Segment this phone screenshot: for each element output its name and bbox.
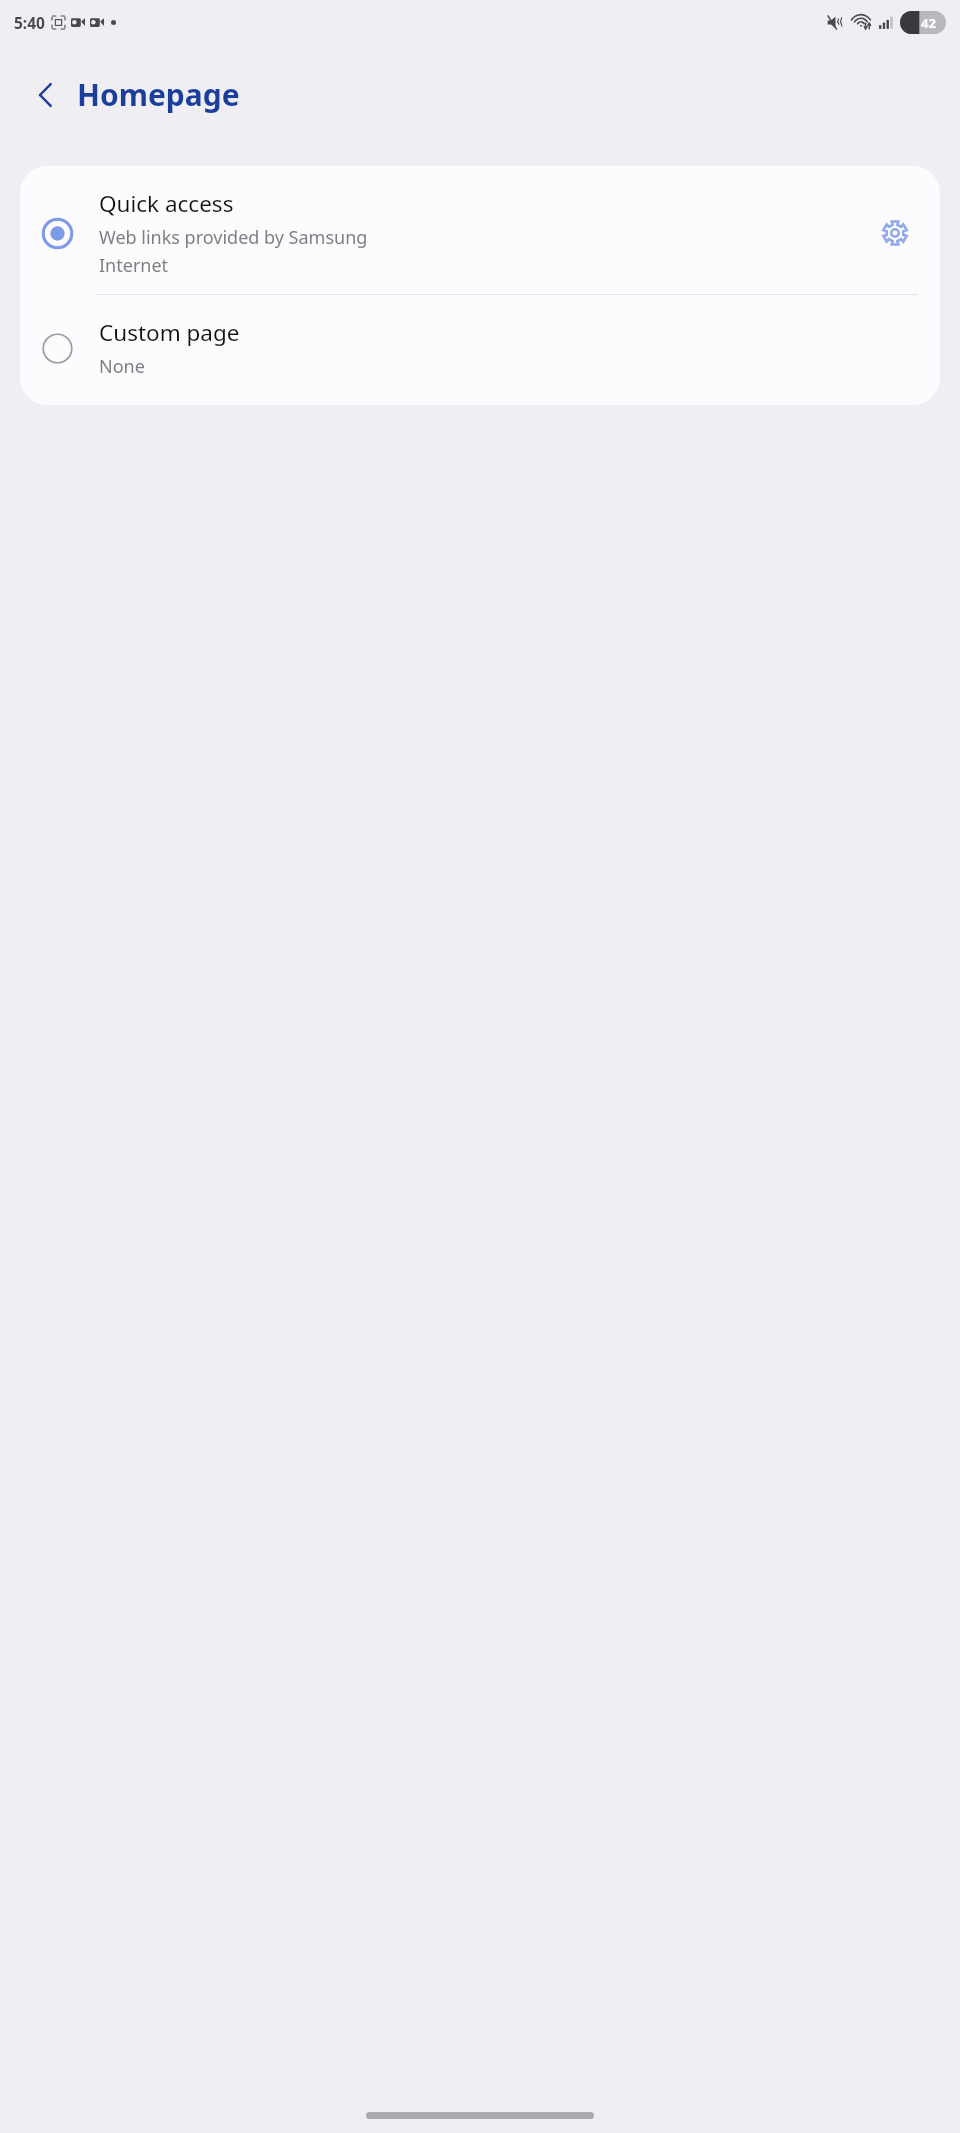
staticText: Custom page (99, 317, 240, 348)
staticText: 5:40 (14, 12, 45, 33)
staticText: Web links provided by Samsung (99, 225, 368, 250)
staticText: 42 (921, 14, 936, 32)
staticText: Internet (99, 253, 169, 278)
button[interactable]: Custom page (20, 295, 940, 405)
button[interactable]: Quick access (20, 166, 940, 294)
staticText: Quick access (99, 188, 234, 219)
button[interactable]: Back (20, 69, 72, 121)
staticText: Homepage (77, 74, 240, 115)
button[interactable]: Quick access settings (872, 210, 918, 256)
staticText: None (99, 354, 145, 379)
